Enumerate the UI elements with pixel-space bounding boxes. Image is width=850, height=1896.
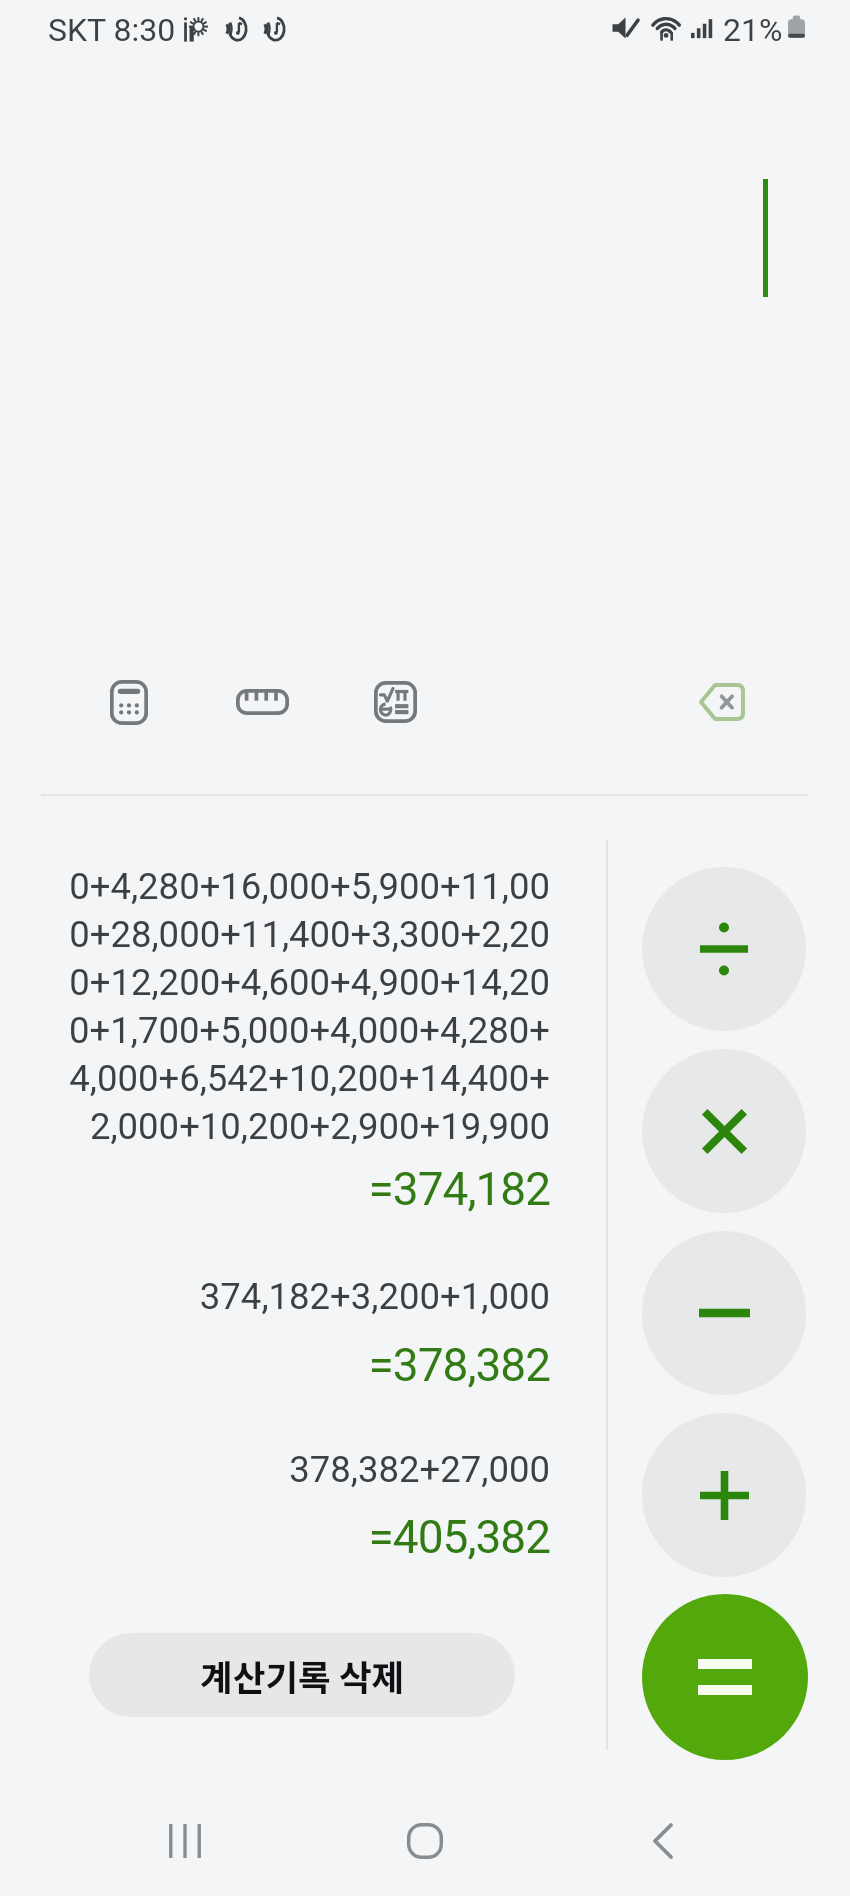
button[interactable]: Backspace (682, 662, 762, 742)
button[interactable]: Multiply (642, 1049, 806, 1213)
button[interactable]: Divide (642, 867, 806, 1031)
button[interactable]: Recent apps (145, 1801, 225, 1881)
button[interactable]: Scientific calculator (355, 662, 435, 742)
staticText: 0+4,280+16,000+5,900+11,00 0+28,000+11,4… (50, 861, 550, 1149)
button[interactable]: Unit converter (222, 662, 302, 742)
staticText: =378,382 (50, 1338, 550, 1392)
button[interactable]: Calculator (89, 662, 169, 742)
button[interactable]: Home (385, 1801, 465, 1881)
staticText: 계산기록 삭제 (200, 1650, 405, 1701)
staticText: 374,182+3,200+1,000 (50, 1271, 550, 1319)
staticText: =405,382 (50, 1510, 550, 1564)
button[interactable]: Subtract (642, 1231, 806, 1395)
staticText: 378,382+27,000 (50, 1444, 550, 1492)
staticText: =374,182 (50, 1162, 550, 1216)
staticText: SKT 8:30 (48, 11, 176, 49)
button[interactable]: Equals (642, 1594, 808, 1760)
button[interactable]: Back (623, 1801, 703, 1881)
button[interactable]: 계산기록 삭제 (89, 1633, 515, 1717)
button[interactable]: Add (642, 1413, 806, 1577)
staticText: 21% (723, 11, 783, 49)
